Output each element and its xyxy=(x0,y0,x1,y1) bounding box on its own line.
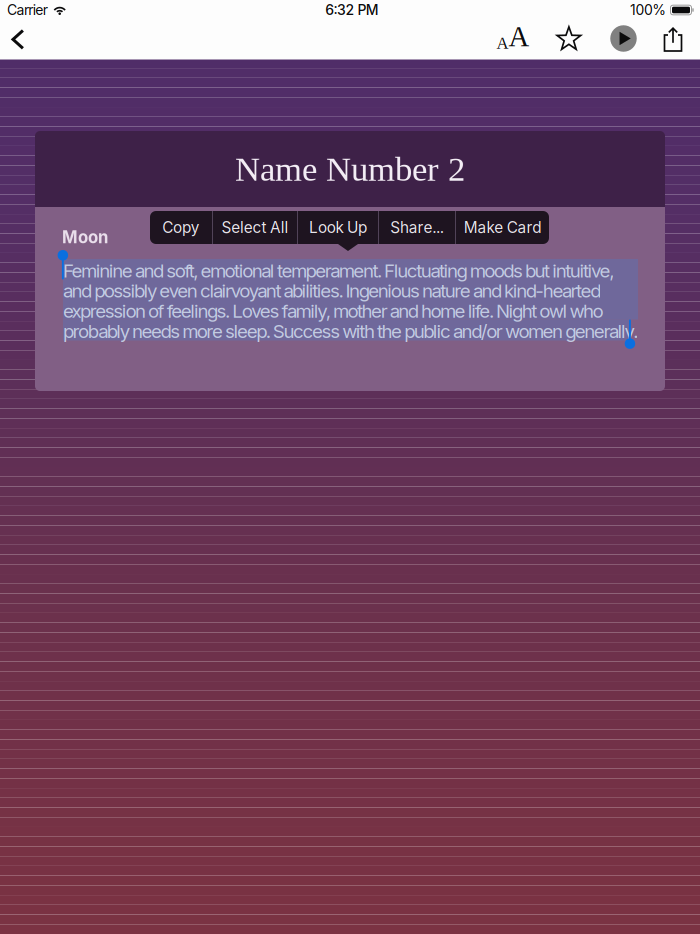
staticText: A xyxy=(508,21,529,52)
staticText: Select All xyxy=(221,218,289,237)
button[interactable]: Select All xyxy=(213,211,297,244)
button[interactable]: Copy xyxy=(150,211,212,244)
staticText: A xyxy=(496,34,508,52)
button[interactable]: Share xyxy=(651,21,695,58)
staticText: Carrier xyxy=(7,1,48,18)
staticText: Moon xyxy=(62,227,108,247)
staticText: Make Card xyxy=(464,218,541,237)
staticText: 100% xyxy=(630,1,666,18)
staticText: Share... xyxy=(390,218,444,237)
staticText: Feminine and soft, emotional temperament… xyxy=(63,260,638,341)
button[interactable]: Share... xyxy=(379,211,455,244)
staticText: Look Up xyxy=(309,218,367,237)
button[interactable]: Make Card xyxy=(456,211,549,244)
button[interactable]: Back xyxy=(0,21,38,58)
button[interactable]: Favorite xyxy=(547,21,591,58)
button[interactable]: Play xyxy=(601,20,645,57)
staticText: Name Number 2 xyxy=(235,150,465,188)
button[interactable]: Look Up xyxy=(298,211,378,244)
button[interactable]: Text size xyxy=(491,18,535,55)
staticText: Copy xyxy=(162,218,200,237)
staticText: 6:32 PM xyxy=(325,1,379,18)
